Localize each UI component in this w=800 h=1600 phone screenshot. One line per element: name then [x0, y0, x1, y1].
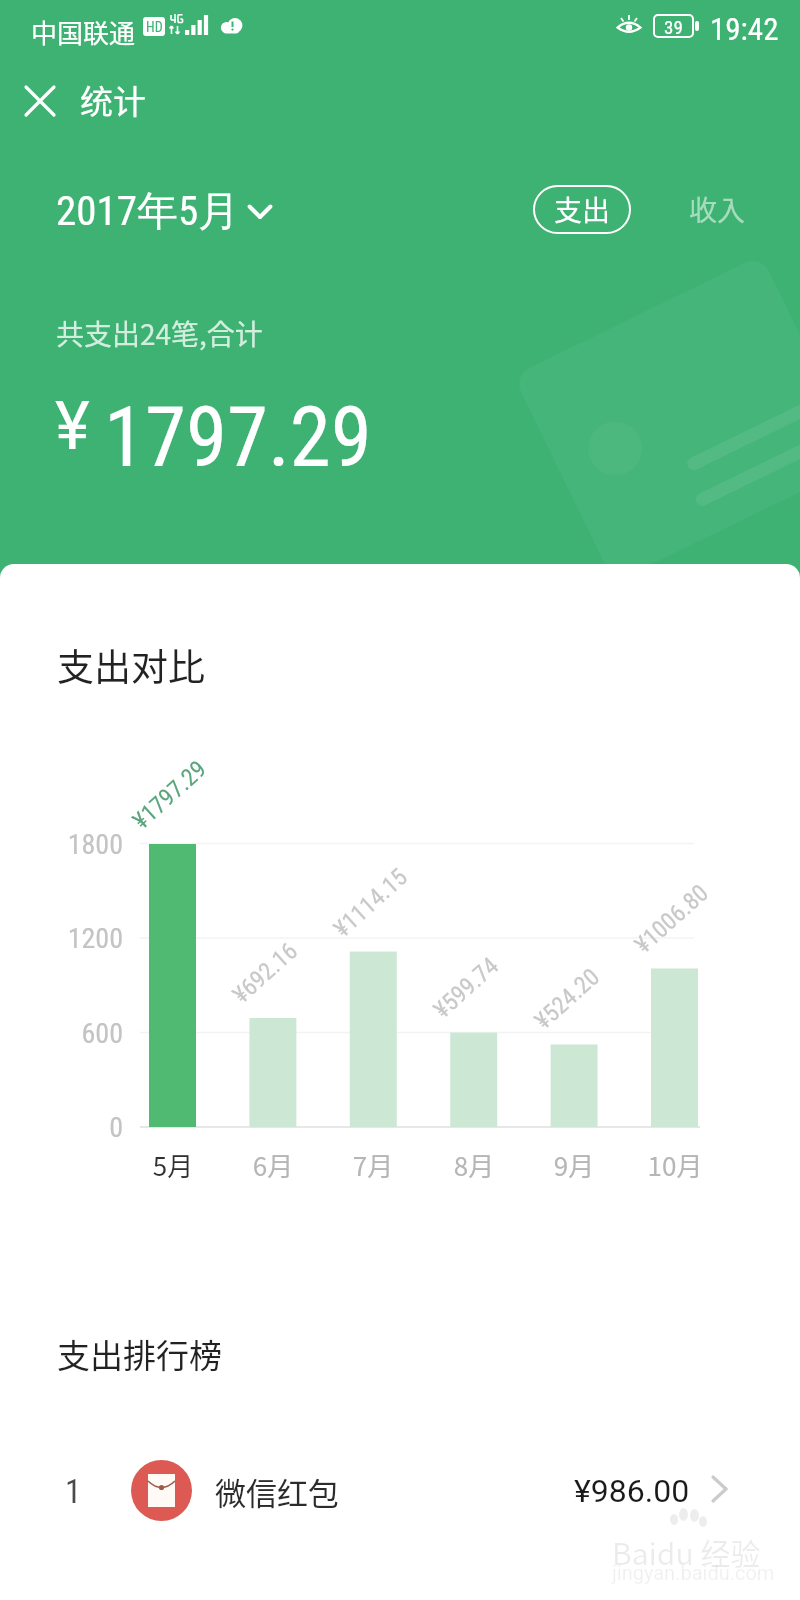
staticText: 收入 [689, 189, 746, 230]
staticText: 中国联通 [31, 13, 136, 51]
staticText: 支出对比 [57, 638, 205, 692]
button[interactable]: 2017年5月 [46, 178, 286, 240]
staticText: 1200 [23, 922, 123, 955]
staticText: 1800 [23, 828, 123, 861]
staticText: 7月 [323, 1146, 423, 1184]
staticText: 600 [23, 1017, 123, 1050]
staticText: ¥524.20 [529, 963, 605, 1035]
staticText: ¥1006.80 [629, 879, 714, 959]
staticText: 8月 [424, 1146, 524, 1184]
staticText: 39 [664, 16, 683, 38]
staticText: 5月 [123, 1146, 223, 1184]
staticText: ¥ [55, 388, 90, 465]
button[interactable]: 收入 [678, 184, 756, 234]
staticText: ¥986.00 [574, 1472, 690, 1510]
staticText: 支出 [554, 189, 611, 230]
staticText: Baidu 经验 [612, 1530, 761, 1573]
staticText: HD [146, 19, 163, 35]
staticText: 1 [65, 1472, 82, 1511]
staticText: 支出排行榜 [57, 1330, 222, 1378]
button[interactable]: Close [17, 78, 63, 124]
staticText: 10月 [625, 1146, 725, 1184]
staticText: 2017年5月 [56, 186, 240, 238]
staticText: ¥1114.15 [328, 863, 413, 943]
staticText: ¥599.74 [428, 952, 504, 1024]
staticText: 9月 [524, 1146, 624, 1184]
staticText: 微信红包 [215, 1469, 339, 1514]
staticText: ¥692.16 [227, 937, 303, 1009]
staticText: 1797.29 [104, 389, 372, 486]
staticText: ¥1797.29 [127, 755, 212, 835]
staticText: 共支出24笔,合计 [56, 313, 263, 354]
button[interactable]: 支出 [533, 185, 631, 234]
staticText: 19:42 [710, 11, 779, 47]
button[interactable]: 1 [0, 1443, 800, 1539]
staticText: 统计 [80, 76, 146, 124]
staticText: jingyan.baidu.com [612, 1561, 775, 1584]
staticText: 6月 [223, 1146, 323, 1184]
staticText: 0 [23, 1111, 123, 1144]
